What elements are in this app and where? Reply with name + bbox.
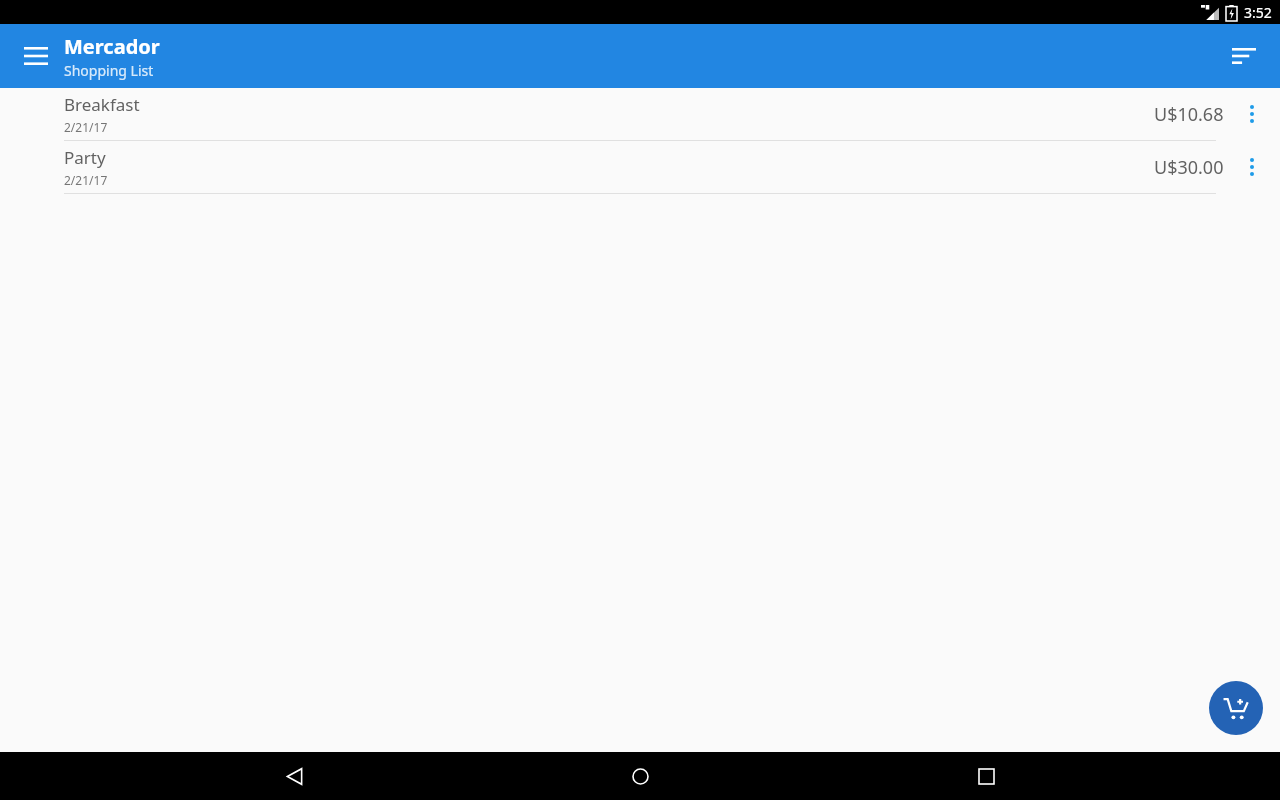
staticText: 2/21/17 [64,119,108,135]
staticText: Shopping List [64,61,154,80]
button[interactable]: Party [0,141,1280,193]
staticText: U$10.68 [1154,102,1224,127]
staticText: Party [64,146,106,169]
staticText: Breakfast [64,93,140,116]
staticText: 2/21/17 [64,172,108,188]
button[interactable]: More options [1238,147,1266,187]
button[interactable]: Home [616,752,664,800]
staticText: 3:52 [1244,3,1272,22]
button[interactable]: Recent apps [962,752,1010,800]
button[interactable]: Add shopping list [1209,681,1263,735]
staticText: U$30.00 [1154,155,1224,180]
button[interactable]: Open navigation menu [12,32,60,80]
staticText: Mercador [64,33,160,60]
button[interactable]: Breakfast [0,88,1280,140]
button[interactable]: Back [270,752,318,800]
button[interactable]: Sort [1220,32,1268,80]
button[interactable]: More options [1238,94,1266,134]
